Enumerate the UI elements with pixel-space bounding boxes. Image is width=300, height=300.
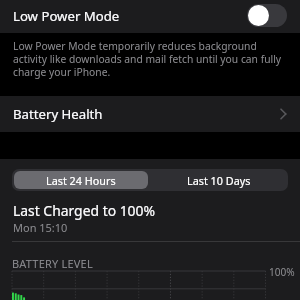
staticText: Last 24 Hours	[46, 173, 116, 188]
staticText: Last Charged to 100%	[13, 201, 156, 220]
other: Open Battery Health	[280, 108, 288, 120]
button[interactable]: Last 24 Hours	[14, 171, 148, 189]
button[interactable]: Low Power Mode	[0, 0, 300, 33]
staticText: Low Power Mode	[13, 7, 120, 25]
staticText: Mon 15:10	[13, 220, 68, 235]
staticText: Low Power Mode temporarily reduces backg…	[13, 39, 288, 79]
staticText: Battery Health	[13, 105, 103, 123]
staticText: Last 10 Days	[187, 173, 251, 188]
staticText: 100%	[269, 265, 295, 279]
button[interactable]: Low Power Mode	[247, 4, 287, 27]
button[interactable]: Last 10 Days	[150, 169, 288, 191]
button[interactable]: Battery Health	[0, 96, 300, 132]
staticText: BATTERY LEVEL	[12, 256, 93, 271]
